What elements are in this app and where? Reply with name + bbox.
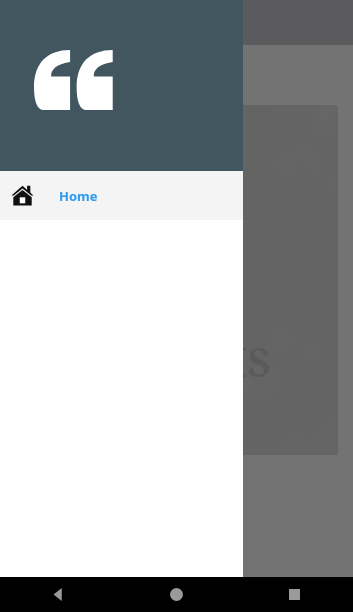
button[interactable]: Home <box>117 577 235 612</box>
staticText: THERE IS <box>81 334 271 388</box>
staticText: Home <box>59 187 98 205</box>
staticText: EAT <box>130 169 222 232</box>
button[interactable]: Home <box>0 171 243 220</box>
button[interactable]: Back <box>0 577 117 612</box>
button[interactable]: Recent apps <box>235 577 353 612</box>
button[interactable]: EAT <box>14 105 338 512</box>
